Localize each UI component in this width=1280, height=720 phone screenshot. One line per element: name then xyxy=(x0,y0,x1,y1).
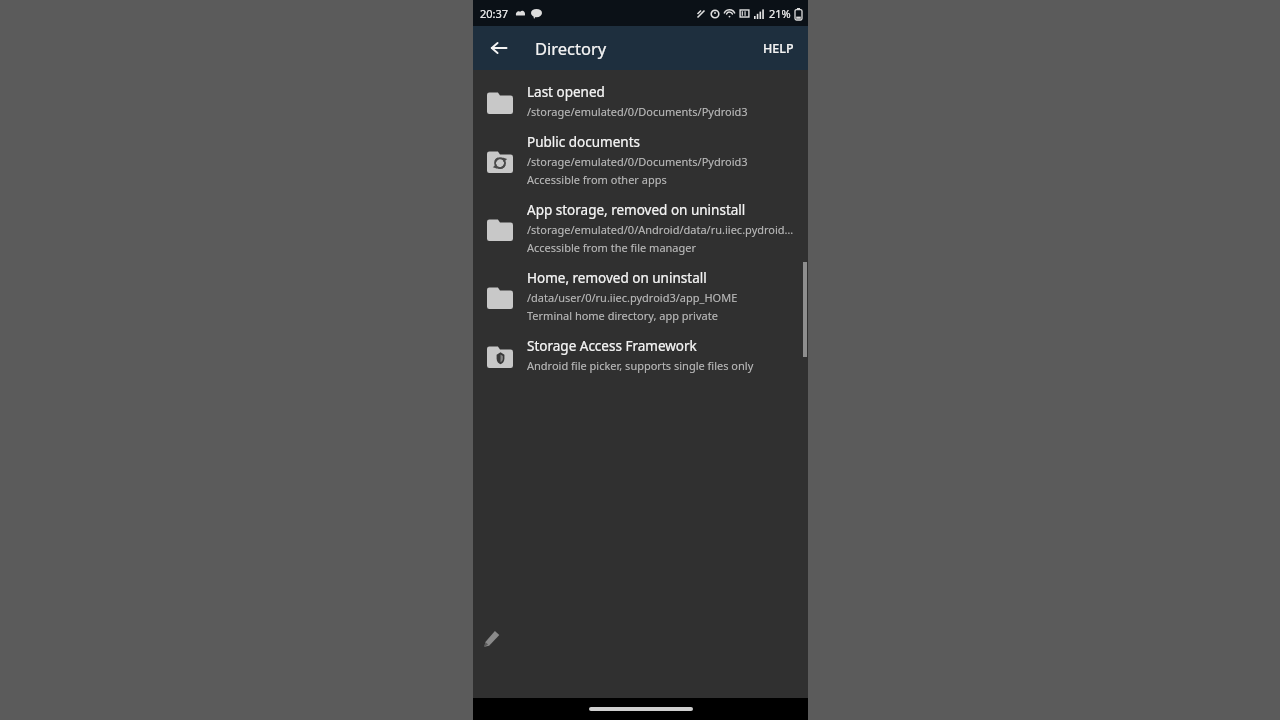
staticText: /data/user/0/ru.iiec.pydroid3/app_HOME xyxy=(527,290,738,305)
staticText: /storage/emulated/0/Documents/Pydroid3 xyxy=(527,154,748,169)
staticText: 21% xyxy=(769,6,791,21)
staticText: Accessible from the file manager xyxy=(527,240,697,255)
staticText: /storage/emulated/0/Documents/Pydroid3 xyxy=(527,104,748,119)
button[interactable]: Home, removed on uninstall xyxy=(473,262,808,330)
button[interactable]: Public documents xyxy=(473,126,808,194)
staticText: App storage, removed on uninstall xyxy=(527,201,746,219)
staticText: Android file picker, supports single fil… xyxy=(527,358,754,373)
staticText: Last opened xyxy=(527,83,605,101)
button[interactable]: Storage Access Framework xyxy=(473,330,808,380)
staticText: Directory xyxy=(535,37,607,59)
staticText: HELP xyxy=(763,40,794,57)
staticText: 20:37 xyxy=(480,6,509,21)
staticText: Storage Access Framework xyxy=(527,337,697,355)
staticText: /storage/emulated/0/Android/data/ru.iiec… xyxy=(527,222,794,237)
button[interactable]: Edit xyxy=(477,624,505,652)
staticText: Accessible from other apps xyxy=(527,172,667,187)
button[interactable]: HELP xyxy=(755,33,802,64)
staticText: Terminal home directory, app private xyxy=(527,308,718,323)
button[interactable]: Back xyxy=(483,32,515,64)
button[interactable]: Last opened xyxy=(473,76,808,126)
staticText: Home, removed on uninstall xyxy=(527,269,707,287)
staticText: Public documents xyxy=(527,133,640,151)
button[interactable]: App storage, removed on uninstall xyxy=(473,194,808,262)
